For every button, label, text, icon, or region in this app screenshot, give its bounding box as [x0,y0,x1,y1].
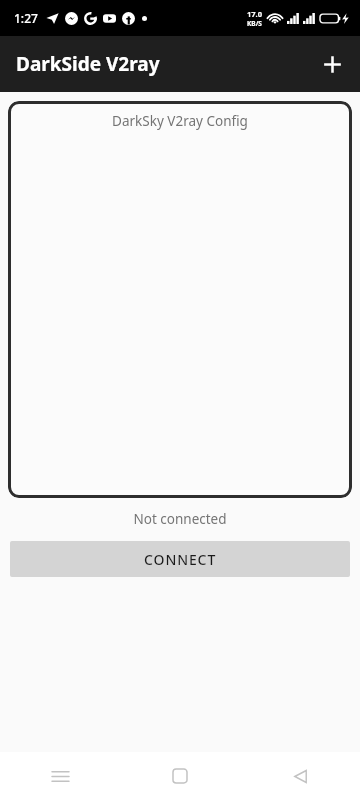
staticText: DarkSky V2ray Config [112,112,248,130]
button[interactable]: Add configuration [312,44,352,84]
staticText: 1:27 [14,10,38,26]
button[interactable]: Back [276,752,324,800]
staticText: Not connected [0,510,360,528]
button[interactable]: DarkSky V2ray Config [8,101,352,498]
button[interactable]: Home [156,752,204,800]
button[interactable]: Recent apps [36,752,84,800]
button[interactable]: CONNECT [10,541,350,577]
staticText: KB/S [247,19,262,28]
staticText: 17.0 [247,9,262,19]
staticText: DarkSide V2ray [16,51,160,77]
staticText: CONNECT [144,550,217,569]
